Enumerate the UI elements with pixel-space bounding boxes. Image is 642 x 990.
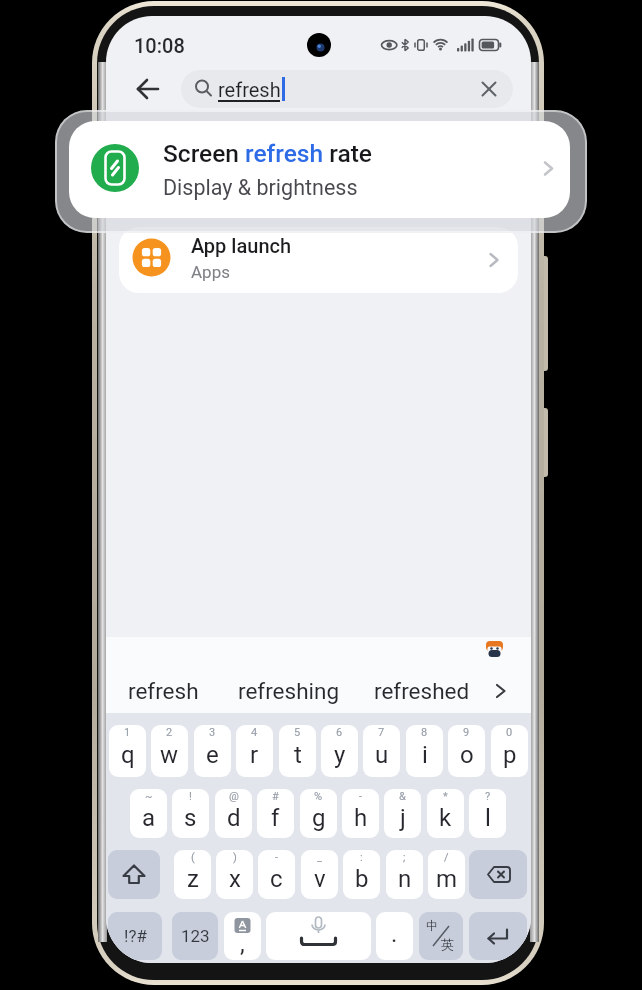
staticText: o [460, 741, 474, 769]
staticText: Display & brightness [163, 175, 358, 200]
staticText: 中 [426, 918, 438, 933]
staticText: d [227, 804, 241, 832]
staticText: 2 [166, 726, 173, 739]
button[interactable]: refreshing [219, 675, 359, 707]
staticText: ? [485, 790, 491, 803]
staticText: y [334, 741, 346, 769]
button[interactable]: 2 [151, 725, 188, 777]
button[interactable]: 9 [448, 725, 485, 777]
staticText: l [485, 804, 491, 832]
button[interactable]: * [427, 789, 464, 838]
button[interactable]: ! [172, 789, 209, 838]
staticText: Screen refresh rate [163, 139, 372, 167]
staticText: 英 [441, 936, 454, 952]
staticText: @ [229, 790, 239, 803]
staticText: # [272, 790, 279, 803]
staticText: f [271, 804, 280, 832]
staticText: refresh [218, 78, 281, 101]
button[interactable]: _ [301, 850, 338, 899]
button[interactable]: 4 [236, 725, 273, 777]
staticText: p [503, 741, 517, 769]
button[interactable]: 0 [491, 725, 528, 777]
button[interactable] [266, 912, 371, 960]
button[interactable] [469, 912, 527, 960]
staticText: / [444, 851, 449, 864]
staticText: 4 [251, 726, 258, 739]
staticText: 3 [209, 726, 216, 739]
button[interactable]: Screen refresh rate [69, 121, 570, 218]
button[interactable] [136, 78, 160, 100]
staticText: ~ [145, 790, 153, 803]
button[interactable]: - [258, 850, 295, 899]
staticText: c [270, 865, 283, 893]
staticText: !?# [124, 926, 147, 946]
staticText: , [240, 930, 245, 958]
staticText: _ [317, 851, 322, 864]
button[interactable]: ? [469, 789, 506, 838]
button[interactable]: 8 [406, 725, 443, 777]
staticText: 10:08 [134, 34, 185, 57]
button[interactable]: / [428, 850, 465, 899]
button[interactable]: # [257, 789, 294, 838]
staticText: n [398, 865, 412, 893]
button[interactable]: : [343, 850, 380, 899]
button[interactable]: 5 [279, 725, 316, 777]
button[interactable]: 7 [363, 725, 400, 777]
button[interactable]: 3 [194, 725, 231, 777]
button[interactable]: refresh [106, 675, 223, 707]
button[interactable]: & [384, 789, 421, 838]
button[interactable]: !?# [108, 912, 162, 960]
button[interactable]: 中 [419, 912, 463, 960]
button[interactable]: ; [386, 850, 423, 899]
staticText: ) [233, 851, 237, 864]
staticText: ! [189, 790, 192, 803]
staticText: t [294, 741, 302, 769]
staticText: v [314, 865, 326, 893]
button[interactable]: , [224, 912, 261, 960]
staticText: i [422, 741, 428, 769]
staticText: j [400, 804, 406, 832]
staticText: - [275, 851, 279, 864]
button[interactable]: App launch [119, 227, 518, 293]
button[interactable]: refreshed [353, 675, 491, 707]
staticText: w [160, 741, 179, 769]
staticText: 8 [421, 726, 428, 739]
staticText: refreshed [374, 678, 470, 704]
staticText: Apps [191, 262, 230, 282]
button[interactable] [108, 850, 160, 899]
staticText: a [142, 804, 156, 832]
staticText: q [121, 741, 135, 769]
staticText: % [314, 790, 323, 803]
staticText: ( [191, 851, 195, 864]
button[interactable]: . [376, 912, 413, 960]
staticText: 1 [124, 726, 131, 739]
staticText: - [359, 790, 363, 803]
button[interactable]: - [342, 789, 379, 838]
button[interactable]: 6 [321, 725, 358, 777]
staticText: g [312, 804, 326, 832]
staticText: 5 [294, 726, 301, 739]
button[interactable]: ( [174, 850, 211, 899]
staticText: m [436, 865, 458, 893]
button[interactable] [469, 850, 527, 899]
button[interactable]: 123 [172, 912, 218, 960]
button[interactable]: ~ [130, 789, 167, 838]
staticText: refresh [128, 678, 199, 704]
staticText: App launch [191, 234, 292, 257]
button[interactable]: refresh [181, 70, 513, 108]
staticText: : [360, 851, 363, 864]
staticText: u [375, 741, 389, 769]
button[interactable]: @ [215, 789, 252, 838]
staticText: r [250, 741, 259, 769]
button[interactable]: ) [216, 850, 253, 899]
staticText: refreshing [238, 678, 340, 704]
staticText: z [187, 865, 199, 893]
button[interactable] [494, 683, 508, 699]
button[interactable]: % [300, 789, 337, 838]
staticText: . [391, 920, 398, 948]
staticText: & [399, 790, 406, 803]
button[interactable]: 1 [109, 725, 146, 777]
staticText: b [355, 865, 369, 893]
staticText: 7 [378, 726, 385, 739]
staticText: k [439, 804, 452, 832]
